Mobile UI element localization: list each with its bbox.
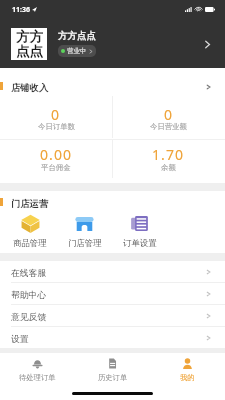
staticText: 0	[164, 105, 174, 124]
button[interactable]: 待处理订单	[0, 353, 75, 386]
staticText: 帮助中心	[11, 290, 47, 301]
staticText: 意见反馈	[11, 312, 47, 323]
button[interactable]: 营业中	[58, 45, 96, 57]
staticText: 平台佣金	[41, 163, 71, 172]
button[interactable]: 0	[0, 96, 112, 139]
staticText: 店铺收入	[11, 82, 49, 94]
staticText: 1.70	[152, 145, 185, 164]
staticText: 在线客服	[11, 268, 47, 279]
staticText: 0.00	[40, 145, 73, 164]
button[interactable]: 订单设置	[112, 214, 167, 249]
button[interactable]: 方方 点点	[0, 19, 225, 68]
button[interactable]: 0	[112, 96, 225, 139]
button[interactable]: 帮助中心	[0, 283, 225, 304]
button[interactable]: 门店管理	[57, 214, 112, 249]
button[interactable]: Income details	[206, 84, 211, 90]
button[interactable]: 历史订单	[75, 353, 150, 386]
button[interactable]: 我的	[150, 353, 225, 386]
staticText: 我的	[180, 373, 195, 382]
staticText: 订单设置	[123, 238, 157, 249]
button[interactable]: 意见反馈	[0, 305, 225, 326]
staticText: 门店运营	[11, 198, 49, 210]
button[interactable]: 设置	[0, 327, 225, 348]
button[interactable]: 商品管理	[3, 214, 57, 249]
button[interactable]: 1.70	[112, 140, 225, 183]
button[interactable]: Shop details	[198, 35, 216, 53]
staticText: 今日订单数	[38, 122, 75, 131]
staticText: 今日营业额	[150, 122, 187, 131]
button[interactable]: 在线客服	[0, 261, 225, 282]
staticText: 方方 点点	[16, 28, 43, 60]
staticText: 待处理订单	[19, 373, 56, 382]
staticText: 11:36	[12, 5, 30, 15]
staticText: 0	[51, 105, 61, 124]
staticText: 方方点点	[58, 30, 96, 42]
staticText: 余额	[161, 163, 176, 172]
button[interactable]: 0.00	[0, 140, 112, 183]
staticText: 商品管理	[13, 238, 47, 249]
staticText: 历史订单	[98, 373, 128, 382]
staticText: 门店管理	[68, 238, 102, 249]
staticText: 设置	[11, 334, 29, 345]
staticText: 营业中	[67, 47, 87, 55]
